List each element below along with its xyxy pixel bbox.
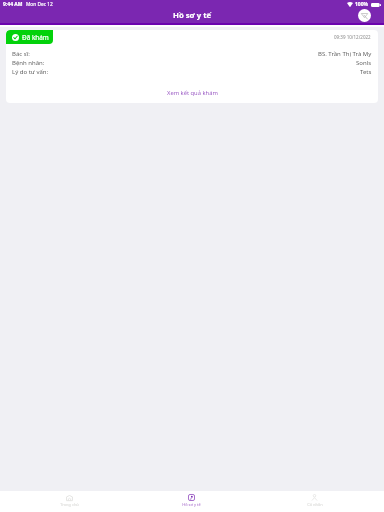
- staticText: Tets: [360, 68, 372, 76]
- staticText: Đã khám: [22, 33, 49, 42]
- staticText: 9:44 AM: [3, 1, 23, 8]
- staticText: Bác sĩ:: [12, 50, 30, 58]
- staticText: Lý do tư vấn:: [12, 68, 49, 76]
- staticText: Cá nhân: [307, 502, 323, 507]
- staticText: Bệnh nhân:: [12, 59, 45, 67]
- staticText: BS. Trần Thị Trà My: [318, 50, 372, 58]
- staticText: Hồ sơ y tế: [182, 502, 201, 507]
- button[interactable]: Trang chủ: [8, 491, 130, 512]
- staticText: Hồ sơ y tế: [173, 10, 212, 20]
- button[interactable]: Đã khám: [6, 30, 53, 44]
- staticText: Xem kết quả khám: [167, 89, 218, 97]
- staticText: 09:39 10/12/2022: [334, 34, 371, 40]
- button[interactable]: Xem kết quả khám: [12, 87, 372, 98]
- button[interactable]: Đã khám: [6, 30, 378, 103]
- staticText: 100%: [355, 1, 369, 8]
- button[interactable]: Hồ sơ y tế: [130, 491, 253, 512]
- staticText: Sonls: [356, 59, 372, 67]
- staticText: Mon Dec 12: [26, 1, 53, 8]
- staticText: Trang chủ: [60, 502, 79, 507]
- button[interactable]: Tài khoản: [358, 9, 371, 22]
